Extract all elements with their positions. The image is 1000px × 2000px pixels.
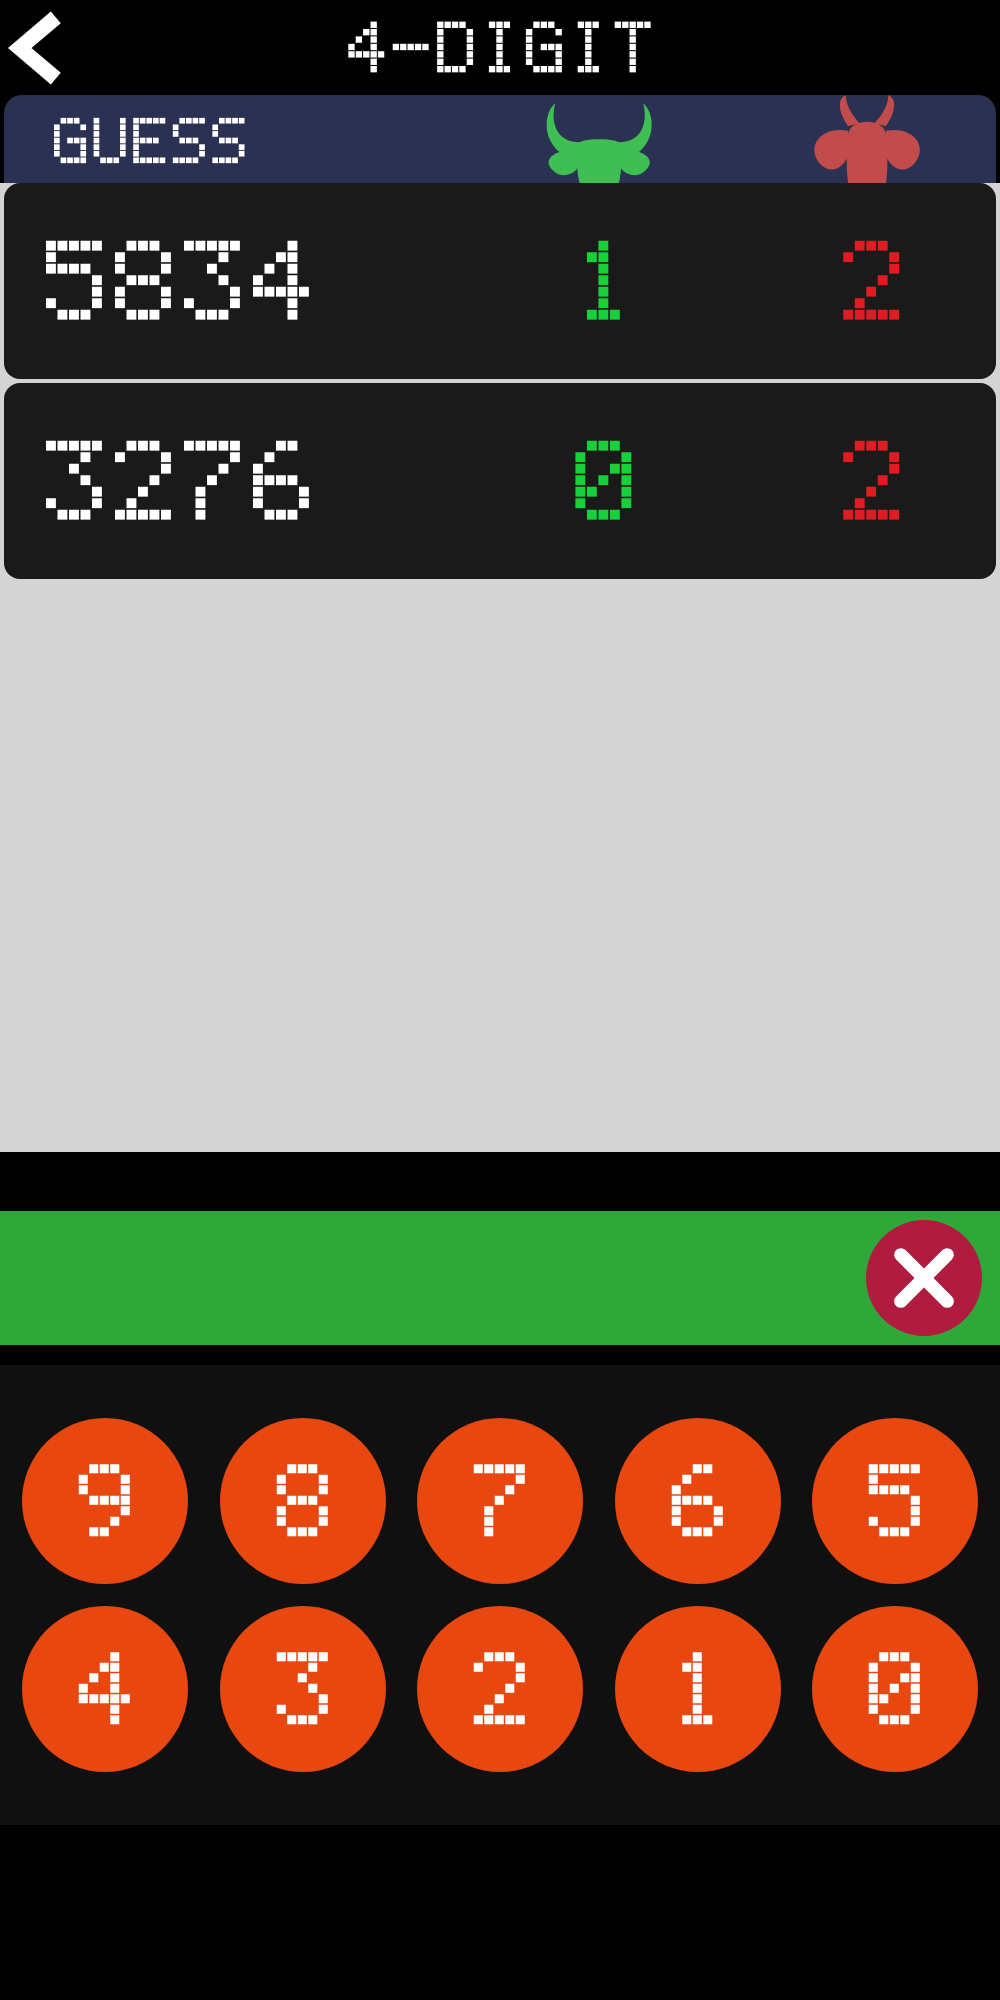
button[interactable]	[4, 383, 996, 579]
button[interactable]	[22, 1606, 188, 1772]
button[interactable]	[417, 1418, 583, 1584]
button[interactable]	[4, 183, 996, 379]
button[interactable]	[220, 1606, 386, 1772]
button[interactable]	[220, 1418, 386, 1584]
button[interactable]	[812, 1418, 978, 1584]
button[interactable]	[22, 1418, 188, 1584]
button[interactable]	[615, 1418, 781, 1584]
button[interactable]	[812, 1606, 978, 1772]
button[interactable]	[417, 1606, 583, 1772]
button[interactable]	[615, 1606, 781, 1772]
button[interactable]: Clear	[866, 1220, 982, 1336]
button[interactable]: Back	[0, 3, 90, 93]
